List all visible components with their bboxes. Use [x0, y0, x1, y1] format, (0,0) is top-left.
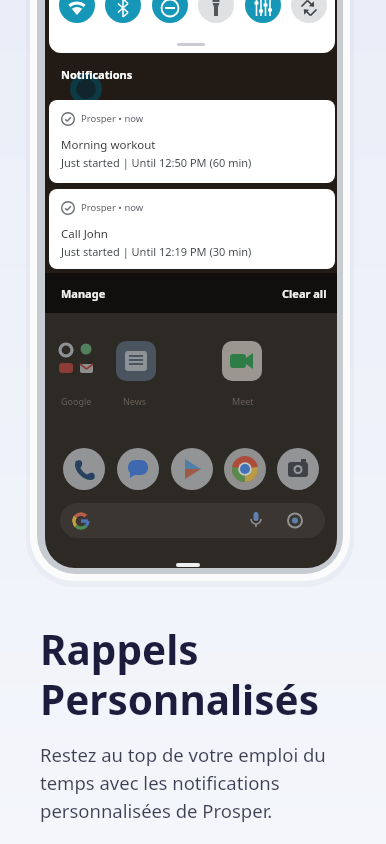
button[interactable]	[45, 273, 337, 313]
button[interactable]	[245, 0, 281, 23]
button[interactable]	[60, 503, 325, 538]
button[interactable]	[105, 0, 141, 23]
button[interactable]: Prosper • now	[49, 100, 335, 183]
staticText: Prosper • now	[81, 201, 144, 214]
button[interactable]: Prosper • now	[49, 189, 335, 269]
button[interactable]	[224, 448, 266, 490]
staticText: Rappels Personnalisés	[40, 622, 320, 727]
button[interactable]	[277, 448, 319, 490]
staticText: Just started | Until 12:19 PM (30 min)	[61, 244, 252, 259]
button[interactable]	[152, 0, 188, 23]
staticText: Call John	[61, 226, 108, 242]
staticText: Restez au top de votre emploi du temps a…	[40, 742, 326, 823]
staticText: Meet	[232, 395, 254, 407]
button[interactable]	[117, 448, 159, 490]
staticText: Notifications	[61, 67, 133, 82]
staticText: Google	[61, 395, 92, 407]
button[interactable]	[63, 448, 105, 490]
staticText: Morning workout	[61, 137, 156, 153]
button[interactable]	[171, 448, 213, 490]
staticText: Prosper • now	[81, 112, 144, 125]
staticText: News	[123, 395, 147, 407]
button[interactable]	[59, 0, 95, 23]
button[interactable]	[198, 0, 234, 23]
staticText: Just started | Until 12:50 PM (60 min)	[61, 155, 252, 170]
staticText: Clear all	[282, 286, 327, 301]
staticText: Manage	[61, 286, 106, 301]
button[interactable]	[291, 0, 327, 23]
